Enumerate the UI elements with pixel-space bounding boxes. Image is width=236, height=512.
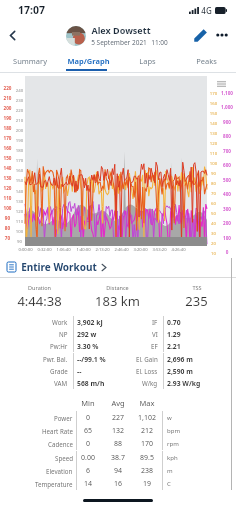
staticText: Grade xyxy=(50,367,68,375)
staticText: 3,902 kJ xyxy=(77,318,103,327)
staticText: 220 xyxy=(14,107,25,113)
staticText: m xyxy=(167,467,173,475)
staticText: 0.70 xyxy=(167,318,181,327)
staticText: bpm xyxy=(167,427,180,435)
button[interactable]: Peaks xyxy=(177,50,236,73)
staticText: 212 xyxy=(130,426,164,436)
staticText: C xyxy=(167,480,171,488)
staticText: Peaks xyxy=(196,56,217,66)
staticText: 100 xyxy=(208,160,219,166)
staticText: 180 xyxy=(14,147,25,153)
staticText: Speed xyxy=(55,454,73,462)
staticText: 30 xyxy=(208,230,219,236)
button[interactable]: Summary xyxy=(0,50,59,73)
staticText: 60 xyxy=(208,200,219,206)
staticText: 5 September 2021 xyxy=(91,38,147,47)
staticText: 190 xyxy=(14,137,25,143)
staticText: 0:32:00 xyxy=(36,247,53,253)
button[interactable]: Chart legend xyxy=(215,79,228,89)
staticText: 80 xyxy=(1,225,14,231)
staticText: El. Loss xyxy=(136,367,158,375)
button[interactable]: Profile photo xyxy=(66,26,86,46)
staticText: 700 xyxy=(218,148,236,154)
staticText: 110 xyxy=(208,150,219,156)
staticText: Temperature xyxy=(35,480,73,488)
staticText: 800 xyxy=(218,133,236,139)
staticText: 110 xyxy=(1,195,14,201)
staticText: 132 xyxy=(101,426,135,436)
staticText: 183 km xyxy=(95,292,140,310)
staticText: 100 xyxy=(1,205,14,211)
staticText: 160 xyxy=(14,167,25,173)
staticText: 20 xyxy=(208,240,219,246)
staticText: 220 xyxy=(1,85,14,91)
staticText: 1:40:00 xyxy=(75,247,92,253)
staticText: 2:46:40 xyxy=(113,247,130,253)
staticText: Cadence xyxy=(48,440,73,448)
staticText: 89.5 xyxy=(130,453,164,463)
staticText: 130 xyxy=(1,175,14,181)
staticText: 90 xyxy=(1,215,14,221)
staticText: 900 xyxy=(218,119,236,125)
staticText: 1.29 xyxy=(167,330,181,339)
staticText: 11:00 xyxy=(151,38,168,47)
staticText: 400 xyxy=(218,191,236,197)
button[interactable]: Entire Workout xyxy=(0,256,236,278)
staticText: 40 xyxy=(208,220,219,226)
staticText: 200 xyxy=(1,105,14,111)
staticText: Entire Workout xyxy=(21,260,97,274)
staticText: Map/Graph xyxy=(67,56,110,66)
staticText: Duration xyxy=(28,284,51,291)
staticText: 210 xyxy=(14,117,25,123)
staticText: 160 xyxy=(208,100,219,106)
button[interactable]: Laps xyxy=(118,50,177,73)
staticText: 3:20:00 xyxy=(132,247,149,253)
staticText: kph xyxy=(167,454,178,462)
staticText: 170 xyxy=(1,135,14,141)
staticText: 16 xyxy=(101,479,135,489)
staticText: 3.30 % xyxy=(77,342,99,351)
staticText: 1,000 xyxy=(218,104,236,110)
staticText: 88 xyxy=(101,439,135,449)
staticText: 170 xyxy=(14,157,25,163)
staticText: 10 xyxy=(208,250,219,256)
staticText: 17:07 xyxy=(18,3,45,17)
staticText: 4G xyxy=(201,5,212,16)
button[interactable]: Back xyxy=(1,24,23,46)
staticText: 200 xyxy=(14,127,25,133)
staticText: EF xyxy=(151,342,158,350)
staticText: --/99.1 % xyxy=(77,355,106,364)
staticText: 100 xyxy=(218,235,236,241)
staticText: El. Gain xyxy=(136,355,158,363)
staticText: 2,696 m xyxy=(167,355,193,364)
staticText: 2,590 m xyxy=(167,367,193,376)
staticText: 120 xyxy=(208,140,219,146)
staticText: 240 xyxy=(14,87,25,93)
staticText: 0.00 xyxy=(71,453,105,463)
staticText: 1:06:40 xyxy=(55,247,72,253)
button[interactable]: Map/Graph xyxy=(59,50,118,73)
staticText: 2:13:20 xyxy=(94,247,111,253)
staticText: Pw:Hr xyxy=(50,342,68,350)
staticText: rpm xyxy=(167,440,179,448)
staticText: Power xyxy=(54,414,73,422)
staticText: Laps xyxy=(139,56,156,66)
staticText: 227 xyxy=(101,413,135,423)
staticText: Summary xyxy=(13,56,47,66)
staticText: w xyxy=(167,414,172,422)
button[interactable]: Edit xyxy=(189,24,211,46)
staticText: 38.7 xyxy=(101,453,135,463)
staticText: 160 xyxy=(1,145,14,151)
staticText: Avg xyxy=(103,398,133,408)
staticText: 94 xyxy=(101,466,135,476)
staticText: 140 xyxy=(1,165,14,171)
staticText: 2.21 xyxy=(167,342,181,351)
staticText: 2.93 W/kg xyxy=(167,379,201,388)
staticText: 4:44:38 xyxy=(17,292,62,310)
staticText: 110 xyxy=(14,218,25,224)
staticText: 0 xyxy=(71,439,105,449)
staticText: 170 xyxy=(130,439,164,449)
staticText: 1,100 xyxy=(218,90,236,96)
button[interactable]: More options xyxy=(211,24,233,46)
staticText: 150 xyxy=(1,155,14,161)
